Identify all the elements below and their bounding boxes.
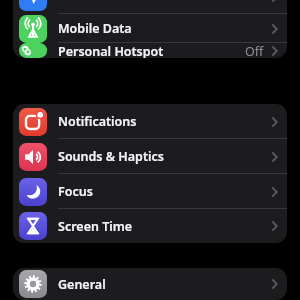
button[interactable]: [13, 0, 287, 14]
button[interactable]: Focus: [13, 174, 287, 209]
staticText: Sounds & Haptics: [58, 148, 164, 165]
button[interactable]: Mobile Data: [13, 14, 287, 43]
staticText: Screen Time: [58, 218, 133, 235]
button[interactable]: Sounds & Haptics: [13, 139, 287, 174]
staticText: Off: [245, 43, 264, 58]
button[interactable]: Notifications: [13, 104, 287, 139]
staticText: General: [58, 276, 106, 293]
button[interactable]: General: [13, 268, 287, 300]
staticText: Personal Hotspot: [58, 43, 164, 58]
staticText: Notifications: [58, 113, 137, 130]
staticText: Focus: [58, 183, 93, 200]
button[interactable]: Screen Time: [13, 209, 287, 243]
button[interactable]: Personal Hotspot: [13, 43, 287, 58]
staticText: Mobile Data: [58, 20, 132, 37]
